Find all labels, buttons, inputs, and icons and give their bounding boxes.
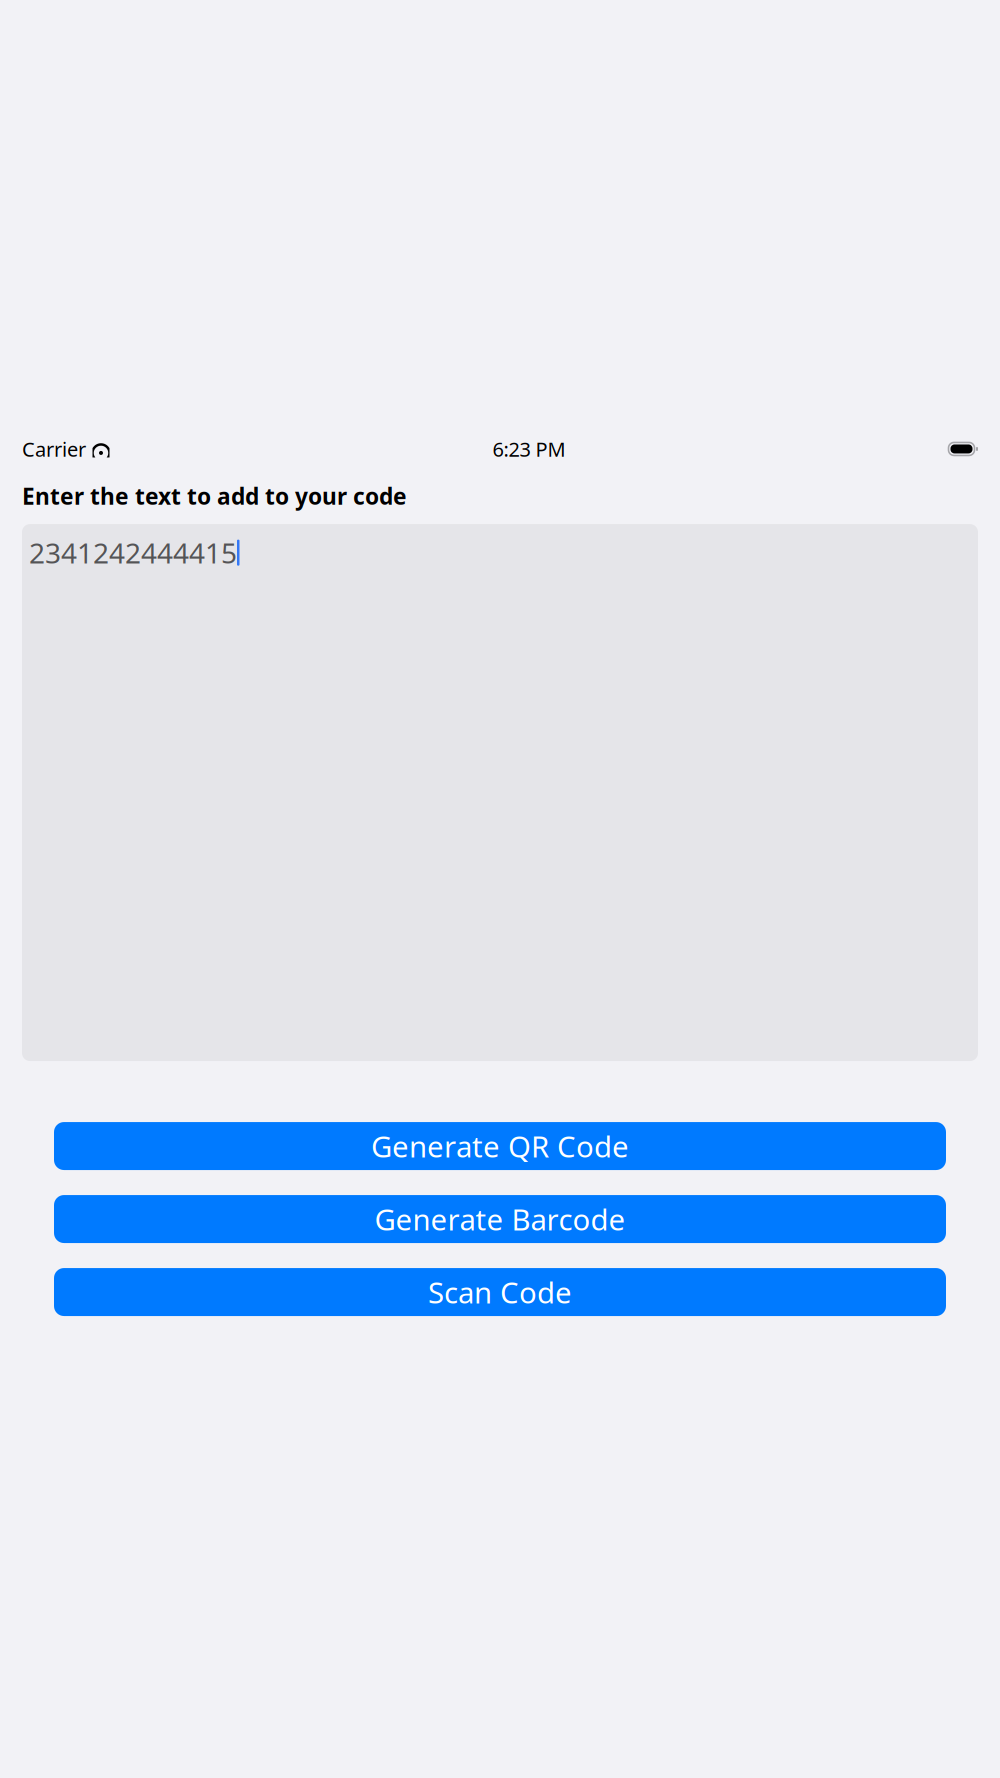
staticText: Carrier [22,436,86,462]
staticText: Enter the text to add to your code [22,481,407,511]
staticText: 2341242444415 [29,534,237,571]
button[interactable]: Scan Code [54,1268,946,1316]
button[interactable]: Generate Barcode [54,1195,946,1243]
staticText: Generate Barcode [374,1200,625,1239]
staticText: Generate QR Code [371,1127,629,1166]
staticText: Scan Code [428,1273,572,1312]
button[interactable]: Generate QR Code [54,1122,946,1170]
staticText: 6:23 PM [492,436,565,462]
